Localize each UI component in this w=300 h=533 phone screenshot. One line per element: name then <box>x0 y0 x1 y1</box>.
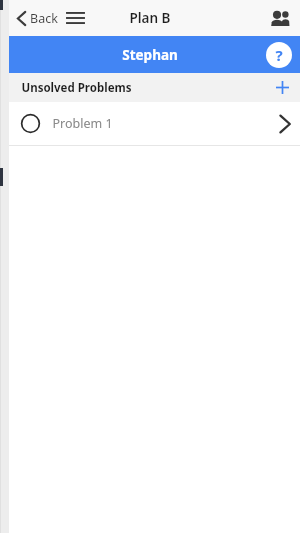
button[interactable]: Menu <box>64 3 86 33</box>
staticText: Problem 1 <box>52 115 113 132</box>
staticText: ? <box>275 45 283 65</box>
staticText: Plan B <box>129 9 171 27</box>
button[interactable]: Back <box>0 0 64 36</box>
button[interactable]: Problem 1 <box>0 102 300 145</box>
staticText: Unsolved Problems <box>21 80 132 96</box>
button[interactable]: Members <box>260 0 300 36</box>
button[interactable]: Add problem <box>264 73 300 102</box>
staticText: Stephan <box>122 46 178 64</box>
button[interactable]: Help <box>266 42 292 68</box>
staticText: Back <box>30 10 58 27</box>
